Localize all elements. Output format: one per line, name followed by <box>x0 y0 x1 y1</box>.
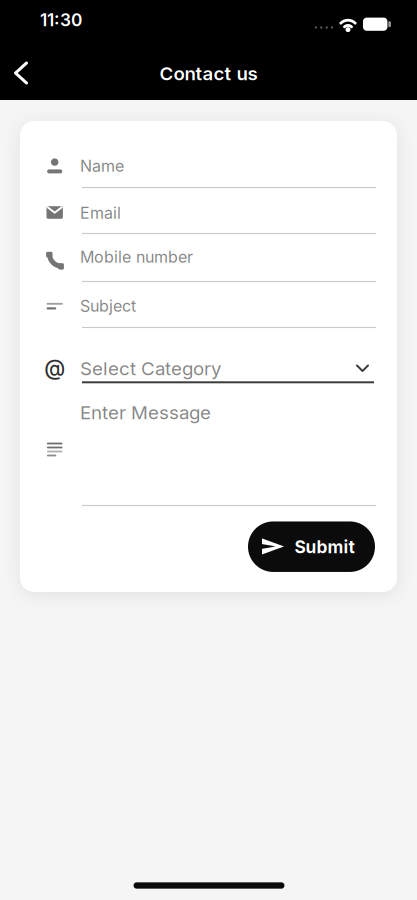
button[interactable]: @ <box>36 345 382 391</box>
button[interactable]: Subject <box>36 285 382 331</box>
staticText: Subject <box>80 297 136 315</box>
staticText: Enter Message <box>80 401 211 423</box>
staticText: Mobile number <box>80 248 193 266</box>
staticText: @ <box>44 355 65 381</box>
staticText: Submit <box>294 537 354 557</box>
button[interactable]: Enter Message <box>36 395 382 513</box>
staticText: Name <box>80 157 124 175</box>
button[interactable] <box>6 59 42 87</box>
button[interactable]: Email <box>36 191 382 237</box>
button[interactable]: Submit <box>248 521 375 572</box>
staticText: Contact us <box>159 62 257 84</box>
staticText: 11:30 <box>40 10 82 30</box>
staticText: Select Category <box>80 357 221 379</box>
staticText: Email <box>80 204 121 222</box>
button[interactable]: Name <box>36 145 382 191</box>
button[interactable]: Mobile number <box>36 239 382 285</box>
